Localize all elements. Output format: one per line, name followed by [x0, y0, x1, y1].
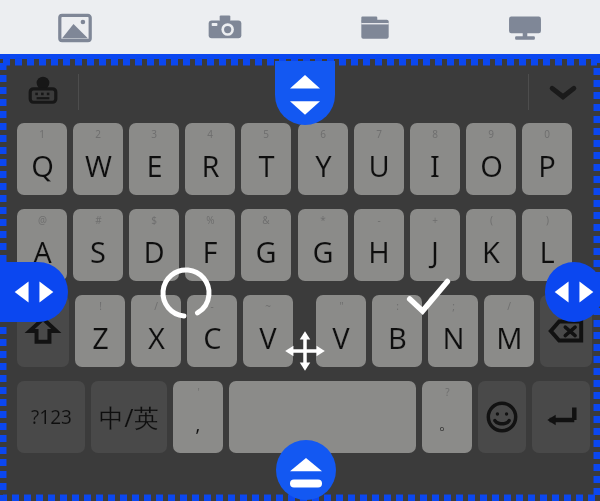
staticText: 7	[376, 127, 382, 141]
staticText: +	[432, 213, 438, 227]
button[interactable]: )	[522, 209, 572, 281]
staticText: 2	[95, 127, 101, 141]
staticText: /	[507, 299, 511, 313]
button[interactable]: ?123	[17, 381, 85, 453]
button[interactable]: Expand keyboard	[276, 440, 336, 500]
staticText: E	[146, 146, 163, 185]
button[interactable]: Files	[300, 0, 450, 55]
staticText: F	[202, 232, 218, 271]
button[interactable]: (	[466, 209, 516, 281]
staticText: %	[206, 213, 215, 227]
staticText: N	[442, 318, 465, 357]
button[interactable]: :	[372, 295, 422, 367]
button[interactable]: 1	[17, 123, 67, 195]
staticText: P	[538, 146, 556, 185]
button[interactable]: -	[187, 295, 237, 367]
button[interactable]: @	[17, 209, 67, 281]
button[interactable]: +	[410, 209, 460, 281]
staticText: )	[546, 213, 549, 227]
button[interactable]: %	[185, 209, 235, 281]
staticText: T	[258, 146, 275, 185]
button[interactable]: 7	[354, 123, 404, 195]
staticText: 0	[544, 127, 550, 141]
staticText: ;	[452, 299, 455, 313]
button[interactable]: 9	[466, 123, 516, 195]
button[interactable]: Resize keyboard	[275, 61, 335, 125]
button[interactable]: 5	[241, 123, 291, 195]
staticText: 3	[151, 127, 157, 141]
staticText: X	[148, 318, 165, 357]
button[interactable]: Hide keyboard	[529, 64, 597, 120]
button[interactable]: 3	[129, 123, 179, 195]
button[interactable]: Drag keyboard	[284, 330, 326, 372]
button[interactable]: Camera	[150, 0, 300, 55]
button[interactable]: Shift	[17, 295, 69, 367]
button[interactable]: Space	[229, 381, 416, 453]
staticText: ?	[445, 385, 450, 399]
staticText: H	[368, 232, 390, 271]
button[interactable]: Screen mirror	[450, 0, 600, 55]
staticText: !	[99, 299, 102, 313]
button[interactable]: &	[241, 209, 291, 281]
staticText: W	[85, 146, 112, 185]
staticText: Z	[92, 318, 109, 357]
staticText: ,	[195, 410, 201, 437]
button[interactable]: '	[173, 381, 223, 453]
staticText: R	[201, 146, 220, 185]
button[interactable]: 4	[185, 123, 235, 195]
button[interactable]: /	[484, 295, 534, 367]
staticText: "	[339, 299, 344, 313]
staticText: 5	[263, 127, 269, 141]
staticText: 6	[320, 127, 326, 141]
staticText: Y	[315, 146, 332, 185]
button[interactable]: *	[298, 209, 348, 281]
staticText: G	[312, 232, 334, 271]
staticText: ~	[265, 299, 271, 313]
button[interactable]: Move right half	[545, 262, 600, 322]
button[interactable]: !	[75, 295, 125, 367]
staticText: I	[430, 146, 440, 185]
button[interactable]: Gallery	[0, 0, 150, 55]
staticText: $	[151, 213, 157, 227]
staticText: V	[332, 318, 350, 357]
button[interactable]: 8	[410, 123, 460, 195]
staticText: O	[480, 146, 503, 185]
staticText: A	[33, 232, 52, 271]
button[interactable]: $	[129, 209, 179, 281]
button[interactable]: ~	[243, 295, 293, 367]
button[interactable]: "	[316, 295, 366, 367]
staticText: (	[490, 213, 493, 227]
staticText: 9	[488, 127, 494, 141]
staticText: B	[388, 318, 407, 357]
button[interactable]: Enter	[532, 381, 590, 453]
staticText: C	[203, 318, 222, 357]
staticText: ?123	[31, 404, 72, 430]
button[interactable]: -	[354, 209, 404, 281]
staticText: D	[143, 232, 165, 271]
staticText: K	[482, 232, 500, 271]
button[interactable]: ;	[428, 295, 478, 367]
staticText: @	[38, 213, 47, 227]
button[interactable]: Change language	[8, 64, 78, 120]
staticText: &	[262, 213, 270, 227]
staticText: J	[431, 232, 439, 271]
staticText: U	[368, 146, 390, 185]
button[interactable]: 中/英	[91, 381, 167, 453]
staticText: -	[377, 213, 381, 227]
staticText: '	[197, 385, 200, 399]
button[interactable]: 2	[73, 123, 123, 195]
button[interactable]: Backspace	[540, 295, 592, 367]
button[interactable]: 0	[522, 123, 572, 195]
button[interactable]: Move left half	[0, 262, 68, 322]
staticText: L	[539, 232, 555, 271]
staticText: *	[320, 213, 326, 227]
staticText: :	[396, 299, 399, 313]
button[interactable]: ?	[422, 381, 472, 453]
button[interactable]: #	[73, 209, 123, 281]
staticText: #	[95, 213, 102, 227]
button[interactable]: 6	[298, 123, 348, 195]
staticText: 。	[438, 412, 456, 435]
button[interactable]: Emoji	[478, 381, 526, 453]
staticText: S	[90, 232, 106, 271]
button[interactable]: /	[131, 295, 181, 367]
